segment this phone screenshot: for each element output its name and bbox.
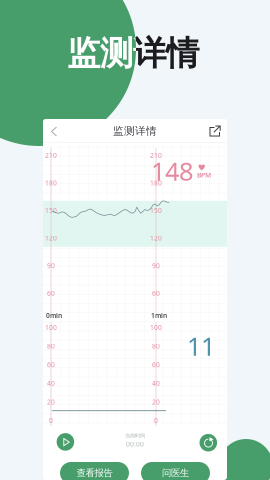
staticText: 60 xyxy=(152,360,160,369)
staticText: 210 xyxy=(45,151,57,160)
staticText: 40 xyxy=(47,379,55,388)
staticText: 100 xyxy=(45,323,57,332)
staticText: 40 xyxy=(152,379,160,388)
staticText: 监测详情 xyxy=(67,33,199,74)
staticText: 120 xyxy=(150,234,162,242)
staticText: 查看报告 xyxy=(76,467,112,479)
staticText: 1min xyxy=(151,311,167,320)
staticText: 00:00 xyxy=(126,440,144,448)
staticText: 问医生 xyxy=(162,467,189,479)
staticText: 210 xyxy=(150,151,162,160)
staticText: 0 xyxy=(154,416,158,425)
button[interactable]: Share xyxy=(203,119,227,143)
staticText: BPM xyxy=(197,170,211,179)
button[interactable]: Play xyxy=(57,433,74,451)
staticText: 100 xyxy=(150,323,162,332)
staticText: 监测详情 xyxy=(113,124,157,137)
staticText: 60 xyxy=(47,360,55,369)
staticText: 20 xyxy=(47,397,55,406)
staticText: 60 xyxy=(152,289,160,298)
staticText: 20 xyxy=(152,397,160,406)
staticText: 120 xyxy=(45,234,57,242)
button[interactable]: Back xyxy=(43,119,67,143)
button[interactable]: Restart xyxy=(199,434,217,451)
button[interactable]: 问医生 xyxy=(141,462,210,480)
staticText: 80 xyxy=(152,342,160,350)
staticText: 180 xyxy=(45,178,57,187)
staticText: 180 xyxy=(150,178,162,187)
staticText: 150 xyxy=(45,206,57,215)
staticText: 80 xyxy=(47,342,55,350)
staticText: 150 xyxy=(150,206,162,215)
button[interactable]: 查看报告 xyxy=(60,462,129,480)
staticText: 90 xyxy=(152,261,160,270)
staticText: 60 xyxy=(47,289,55,298)
staticText: 0min xyxy=(46,311,62,320)
staticText: 11 xyxy=(187,329,215,363)
staticText: 当前时间 xyxy=(125,432,145,439)
staticText: 148 xyxy=(151,154,193,188)
staticText: 0 xyxy=(49,416,53,425)
staticText: 90 xyxy=(47,261,55,270)
staticText: 监测详情 xyxy=(67,33,199,74)
